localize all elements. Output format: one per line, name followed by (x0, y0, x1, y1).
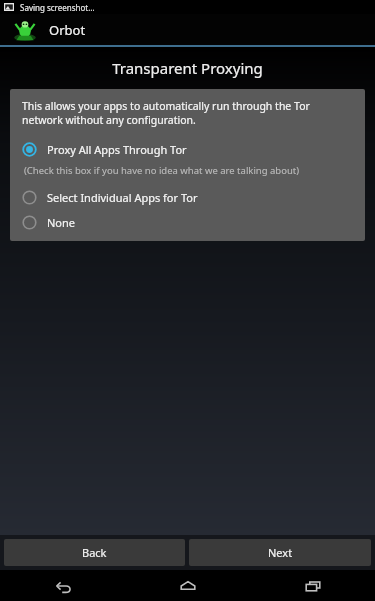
staticText: This allows your apps to automatically r… (22, 99, 353, 127)
button[interactable]: Back (0, 570, 125, 601)
button[interactable]: Recent apps (250, 570, 375, 601)
button[interactable]: None (22, 214, 353, 231)
button[interactable]: Home (125, 570, 250, 601)
button[interactable]: Proxy All Apps Through Tor (22, 141, 353, 158)
staticText: Select Individual Apps for Tor (47, 190, 198, 205)
button[interactable]: Select Individual Apps for Tor (22, 189, 353, 206)
button[interactable]: Next (189, 539, 371, 566)
staticText: Proxy All Apps Through Tor (47, 142, 187, 157)
staticText: Orbot (49, 21, 86, 39)
button[interactable]: Back (4, 539, 185, 566)
staticText: None (47, 215, 76, 230)
staticText: Transparent Proxying (0, 58, 375, 78)
staticText: (Check this box if you have no idea what… (24, 164, 300, 177)
staticText: Saving screenshot… (20, 2, 95, 13)
staticText: Next (268, 545, 293, 560)
staticText: Back (82, 545, 107, 560)
